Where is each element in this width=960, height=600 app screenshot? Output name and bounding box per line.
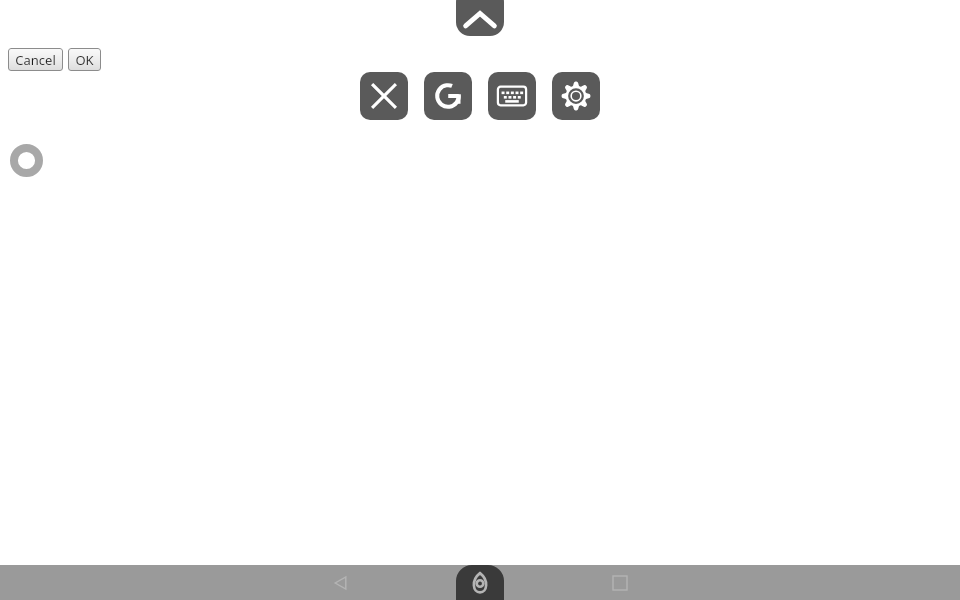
- staticText: Cancel: [15, 51, 56, 69]
- button[interactable]: Collapse toolbar: [456, 0, 504, 36]
- button[interactable]: Rotate: [424, 72, 472, 120]
- button[interactable]: Cancel: [8, 48, 63, 71]
- button[interactable]: Back: [310, 565, 372, 600]
- button[interactable]: Close: [360, 72, 408, 120]
- staticText: OK: [75, 51, 94, 69]
- button[interactable]: Recording indicator: [10, 144, 43, 177]
- button[interactable]: Recents: [589, 565, 651, 600]
- button[interactable]: OK: [68, 48, 101, 71]
- button[interactable]: Home: [456, 565, 504, 600]
- button[interactable]: Settings: [552, 72, 600, 120]
- button[interactable]: Keyboard: [488, 72, 536, 120]
